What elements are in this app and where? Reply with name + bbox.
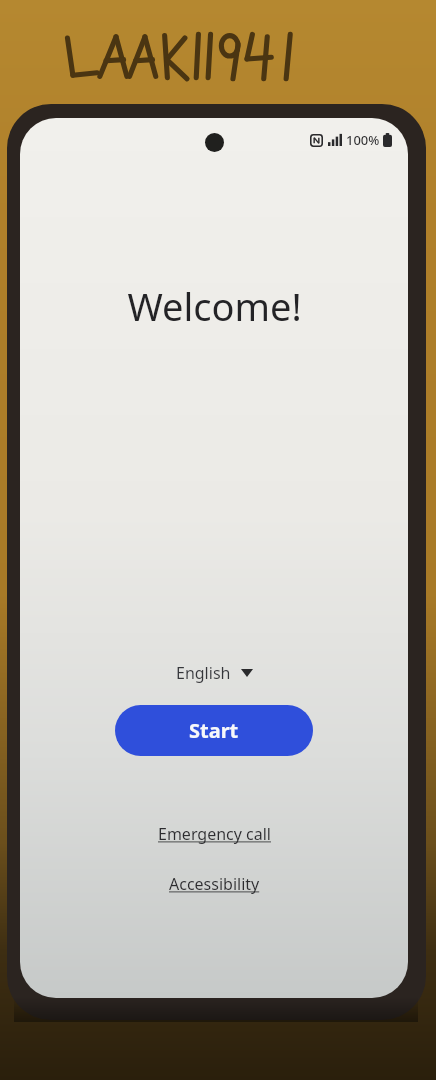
button[interactable]: English	[162, 656, 267, 690]
button[interactable]: Accessibility	[159, 869, 270, 899]
staticText: English	[176, 662, 231, 684]
button[interactable]: Start	[115, 705, 313, 756]
staticText: Accessibility	[169, 873, 260, 895]
staticText: Start	[189, 717, 239, 744]
staticText: Welcome!	[127, 280, 302, 332]
staticText: Emergency call	[158, 823, 271, 845]
staticText: 100%	[346, 131, 380, 149]
button[interactable]: Emergency call	[148, 819, 281, 849]
